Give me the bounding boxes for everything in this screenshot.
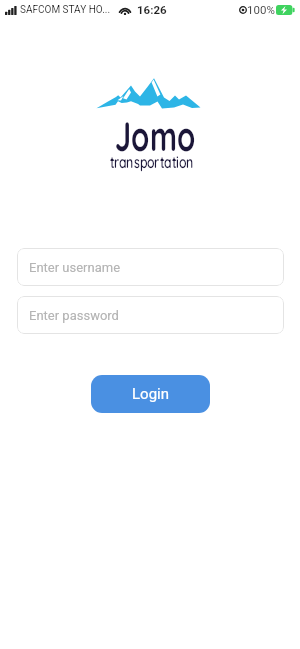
staticText: 100% (247, 3, 275, 16)
staticText: Enter username (29, 260, 121, 275)
button[interactable]: Enter username (17, 248, 284, 286)
staticText: SAFCOM STAY HO... (20, 4, 111, 16)
staticText: 16:26 (137, 3, 167, 16)
button[interactable]: Login (91, 375, 210, 413)
button[interactable]: Enter password (17, 296, 284, 334)
staticText: Login (132, 385, 169, 403)
staticText: Enter password (29, 308, 119, 323)
